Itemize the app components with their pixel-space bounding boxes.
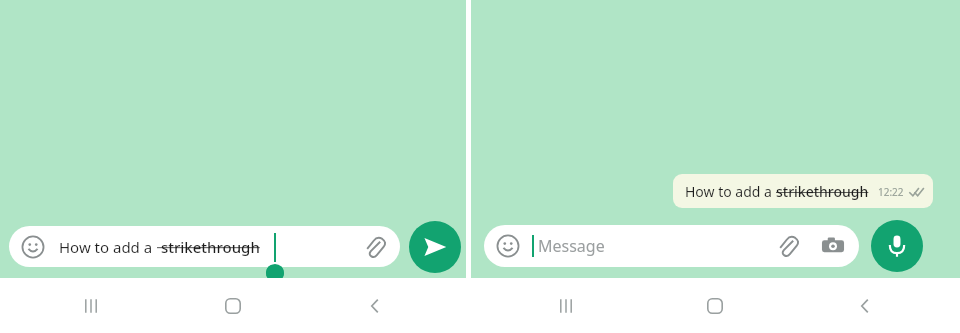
- button[interactable]: Emoji: [496, 234, 520, 258]
- button[interactable]: Send: [409, 221, 461, 273]
- button[interactable]: Voice message: [871, 220, 923, 272]
- button[interactable]: Emoji: [9, 226, 400, 267]
- button[interactable]: Home: [640, 278, 790, 333]
- button[interactable]: Emoji: [484, 225, 859, 267]
- staticText: 12:22: [878, 185, 904, 199]
- button[interactable]: How to add a: [673, 174, 933, 208]
- button[interactable]: Back: [304, 278, 446, 333]
- staticText: Message: [538, 235, 605, 257]
- button[interactable]: Back: [790, 278, 940, 333]
- staticText: strikethrough: [776, 182, 869, 201]
- button[interactable]: Emoji: [21, 235, 45, 259]
- button[interactable]: Camera: [821, 234, 845, 258]
- button[interactable]: Recents: [491, 278, 640, 333]
- staticText: How to add a: [685, 182, 776, 201]
- staticText: strikethrough: [157, 237, 260, 257]
- button[interactable]: Home: [162, 278, 304, 333]
- button[interactable]: Attach: [775, 233, 801, 259]
- staticText: How to add a: [59, 237, 157, 257]
- button[interactable]: Attach: [362, 234, 388, 260]
- button[interactable]: Recents: [20, 278, 162, 333]
